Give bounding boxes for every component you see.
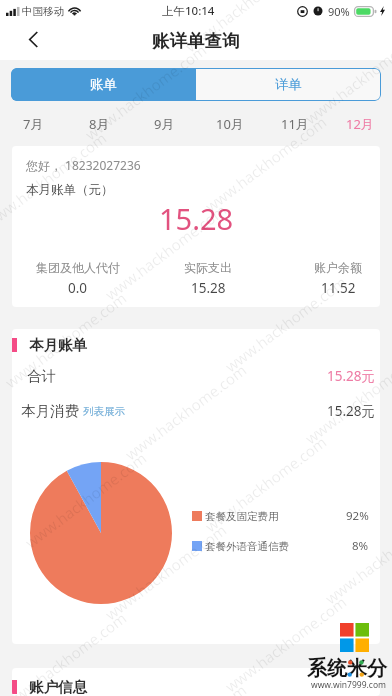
button[interactable]: 9月 [132, 107, 197, 141]
staticText: 上午10:14 [162, 3, 215, 19]
staticText: 本月消费 [21, 402, 79, 420]
staticText: 集团及他人代付 [36, 260, 120, 275]
staticText: www.hackhome.com [121, 360, 250, 464]
staticText: 实际支出 [184, 260, 232, 275]
staticText: www.hackhome.com [181, 0, 310, 56]
button[interactable]: 套餐外语音通信费 [192, 538, 369, 554]
button[interactable]: 集团及他人代付 [13, 260, 143, 297]
button[interactable]: 8月 [66, 107, 132, 141]
button[interactable]: 账单 [11, 68, 196, 101]
staticText: 7月 [23, 115, 44, 133]
staticText: 92% [346, 508, 369, 524]
staticText: 合计 [27, 367, 56, 385]
staticText: 15.28元 [327, 402, 376, 420]
staticText: 15.28 [191, 279, 226, 297]
staticText: www.hackhome.com [201, 432, 330, 536]
staticText: 90% [328, 4, 350, 19]
button[interactable]: 本月消费 [21, 399, 376, 423]
button[interactable]: 返回 [15, 21, 51, 57]
button[interactable]: 7月 [0, 107, 66, 141]
staticText: 本月账单（元） [26, 182, 114, 198]
staticText: 详单 [275, 76, 302, 93]
staticText: 您好， 18232027236 [26, 157, 141, 173]
staticText: 12月 [346, 115, 374, 133]
button[interactable]: 套餐及固定费用 [192, 508, 369, 524]
button[interactable]: 10月 [197, 107, 262, 141]
staticText: 8% [352, 538, 369, 554]
staticText: www.hackhome.com [1, 288, 130, 392]
staticText: 9月 [154, 115, 175, 133]
staticText: 列表展示 [83, 405, 125, 418]
button[interactable]: 11月 [262, 107, 327, 141]
staticText: www.hackhome.com [201, 112, 330, 216]
staticText: www.hackhome.com [101, 520, 230, 624]
staticText: www.hackhome.com [0, 128, 110, 232]
staticText: 15.28元 [327, 367, 376, 385]
staticText: 中国移动 [22, 5, 64, 18]
staticText: 账详单查询 [152, 30, 240, 52]
staticText: 账单 [90, 76, 117, 93]
staticText: 套餐外语音通信费 [205, 540, 289, 553]
staticText: 套餐及固定费用 [205, 510, 279, 523]
staticText: www.win7999.com [311, 679, 387, 691]
button[interactable]: 12月 [327, 107, 392, 141]
staticText: 账户余额 [314, 260, 362, 275]
staticText: 本月账单 [29, 336, 87, 354]
staticText: www.hackhome.com [101, 200, 230, 304]
staticText: 10月 [216, 115, 244, 133]
staticText: www.hackhome.com [321, 504, 392, 608]
staticText: 11.52 [321, 279, 356, 297]
staticText: 15.28 [159, 199, 234, 238]
button[interactable]: 账户余额 [273, 260, 380, 297]
staticText: www.hackhome.com [21, 448, 150, 552]
button[interactable]: 列表展示 [83, 405, 125, 418]
staticText: www.hackhome.com [301, 344, 392, 448]
button[interactable]: 合计 [27, 364, 376, 388]
staticText: www.hackhome.com [81, 40, 210, 144]
staticText: www.hackhome.com [221, 272, 350, 376]
staticText: www.hackhome.com [1, 608, 130, 696]
staticText: 系统米分 [307, 656, 387, 681]
staticText: 11月 [281, 115, 309, 133]
staticText: 0.0 [68, 279, 88, 297]
staticText: www.hackhome.com [221, 592, 350, 696]
staticText: www.hackhome.com [301, 24, 392, 128]
button[interactable]: 实际支出 [143, 260, 273, 297]
staticText: 8月 [89, 115, 110, 133]
button[interactable]: 详单 [196, 68, 381, 101]
staticText: 账户信息 [29, 678, 87, 696]
